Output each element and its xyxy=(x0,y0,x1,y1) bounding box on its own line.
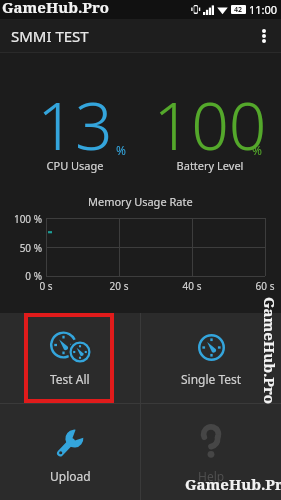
button[interactable]: Upload xyxy=(0,404,140,500)
staticText: GameHub.Pro xyxy=(262,297,280,404)
button[interactable]: Test All xyxy=(0,313,140,403)
staticText: Test All xyxy=(50,371,90,387)
staticText: 100 % xyxy=(0,212,42,226)
staticText: 13 xyxy=(10,79,140,169)
staticText: 0 s xyxy=(26,279,66,293)
staticText: 100 xyxy=(145,79,275,169)
staticText: 50 % xyxy=(0,241,42,255)
staticText: 60 s xyxy=(245,279,281,293)
staticText: SMMI TEST xyxy=(11,26,89,46)
staticText: 0 % xyxy=(0,269,42,283)
button[interactable]: Single Test xyxy=(141,313,281,403)
staticText: Upload xyxy=(50,468,91,484)
staticText: GameHub.Pro xyxy=(2,0,109,17)
staticText: 40 s xyxy=(172,279,212,293)
staticText: 20 s xyxy=(99,279,139,293)
staticText: CPU Usage xyxy=(10,158,140,173)
other: Upload xyxy=(55,429,85,459)
staticText: 11:00 xyxy=(249,2,278,17)
staticText: Help xyxy=(198,468,225,484)
staticText: GameHub.Pro xyxy=(185,474,281,494)
staticText: % xyxy=(252,142,262,158)
staticText: Memory Usage Rate xyxy=(88,194,193,209)
staticText: Battery Level xyxy=(145,158,275,173)
button[interactable]: Help xyxy=(141,404,281,500)
staticText: 42 xyxy=(234,5,243,14)
other: Help xyxy=(200,426,222,458)
button[interactable]: More options xyxy=(247,19,281,53)
staticText: % xyxy=(116,142,126,158)
staticText: Single Test xyxy=(181,371,242,387)
